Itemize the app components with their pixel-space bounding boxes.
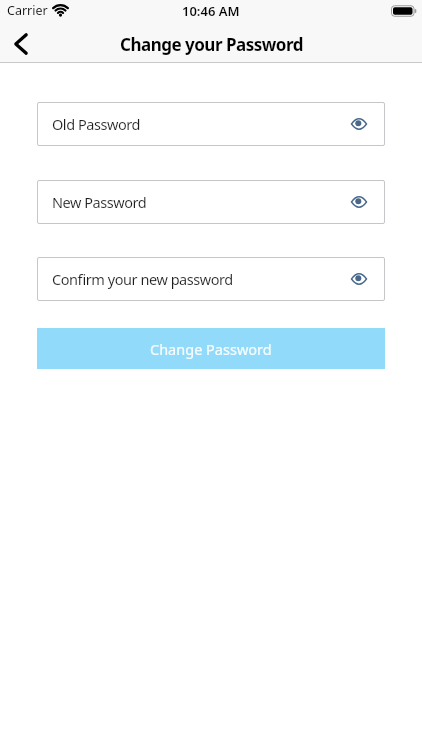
staticText: New Password: [52, 192, 147, 212]
staticText: Old Password: [52, 114, 140, 134]
staticText: Change your Password: [120, 33, 303, 56]
staticText: Carrier: [7, 2, 48, 19]
button[interactable]: Old Password: [37, 102, 385, 146]
button[interactable]: New Password: [37, 180, 385, 224]
staticText: Confirm your new password: [52, 269, 233, 289]
staticText: 10:46 AM: [182, 2, 240, 20]
staticText: Change Password: [150, 339, 272, 359]
button[interactable]: Change Password: [37, 328, 385, 369]
button[interactable]: Confirm your new password: [37, 257, 385, 301]
button[interactable]: [8, 31, 34, 57]
